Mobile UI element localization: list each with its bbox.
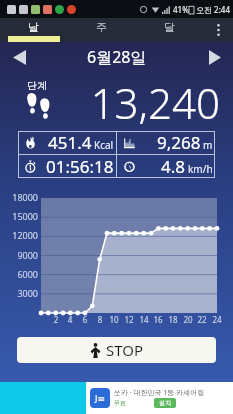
staticText: 24 <box>210 314 224 325</box>
staticText: km/h <box>188 162 213 176</box>
staticText: 2 <box>49 314 63 325</box>
button[interactable]: J≡ <box>0 382 233 414</box>
staticText: m <box>203 138 213 152</box>
button[interactable]: 날 <box>0 18 67 42</box>
staticText: 오전 2:44 <box>196 4 230 15</box>
staticText: 달 <box>164 20 175 34</box>
staticText: 14 <box>137 314 151 325</box>
staticText: 날 <box>28 20 39 34</box>
button[interactable]: Previous day <box>0 42 38 72</box>
staticText: 설치 <box>159 399 171 407</box>
staticText: 18 <box>166 314 180 325</box>
button[interactable]: 주 <box>67 18 135 42</box>
staticText: J≡ <box>95 392 105 404</box>
staticText: 6000 <box>0 268 38 280</box>
staticText: 451.4 <box>48 131 92 154</box>
staticText: 12 <box>122 314 136 325</box>
staticText: 16 <box>151 314 165 325</box>
staticText: 22 <box>195 314 209 325</box>
staticText: 13,240 <box>0 74 220 131</box>
staticText: 쏘카 · 대한민국 1등 카셰어링 <box>114 388 205 398</box>
staticText: 20 <box>181 314 195 325</box>
staticText: 15000 <box>0 210 38 222</box>
staticText: STOP <box>106 340 144 360</box>
staticText: 01:56:18 <box>46 155 114 178</box>
staticText: 10 <box>107 314 121 325</box>
staticText: Kcal <box>94 138 114 152</box>
staticText: 9,268 <box>157 131 201 154</box>
staticText: 41% <box>173 4 189 15</box>
staticText: 6월28일 <box>87 46 147 68</box>
staticText: 9000 <box>0 249 38 261</box>
staticText: 18000 <box>0 191 38 203</box>
staticText: 6 <box>78 314 92 325</box>
staticText: 무료 <box>114 399 126 407</box>
staticText: 단계 <box>27 79 47 92</box>
staticText: 8 <box>93 314 107 325</box>
staticText: 주 <box>96 20 107 34</box>
button[interactable]: More options <box>203 18 233 42</box>
button[interactable]: Next day <box>195 42 233 72</box>
button[interactable]: 달 <box>135 18 203 42</box>
staticText: 4 <box>63 314 77 325</box>
staticText: 4.8 <box>161 155 186 178</box>
staticText: 3000 <box>0 287 38 299</box>
button[interactable]: STOP <box>17 337 216 363</box>
staticText: 12000 <box>0 229 38 241</box>
